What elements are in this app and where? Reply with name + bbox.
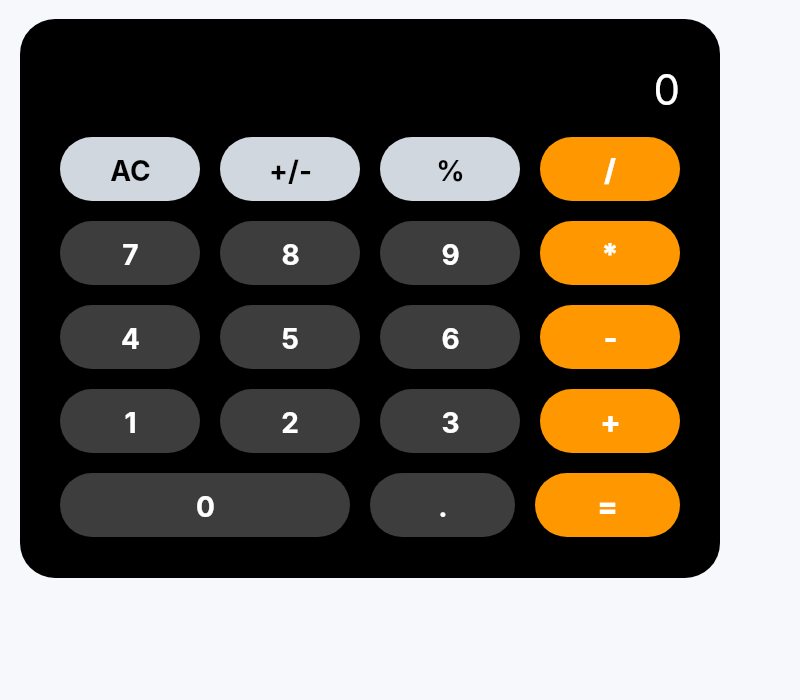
staticText: 3 [441, 406, 460, 440]
staticText: / [604, 152, 616, 188]
staticText: % [436, 154, 465, 188]
button[interactable]: 2 [220, 389, 360, 453]
staticText: * [601, 236, 619, 272]
staticText: 0 [653, 64, 680, 115]
button[interactable]: + [540, 389, 680, 453]
staticText: 7 [122, 238, 139, 272]
button[interactable]: 7 [60, 221, 200, 285]
staticText: 5 [281, 322, 299, 356]
staticText: 1 [124, 406, 137, 440]
button[interactable]: 0 [60, 473, 350, 537]
button[interactable]: 3 [380, 389, 520, 453]
button[interactable]: 5 [220, 305, 360, 369]
staticText: 6 [441, 322, 460, 356]
button[interactable]: . [370, 473, 515, 537]
button[interactable]: / [540, 137, 680, 201]
staticText: AC [110, 154, 151, 188]
button[interactable]: = [535, 473, 680, 537]
button[interactable]: 1 [60, 389, 200, 453]
staticText: - [603, 320, 618, 356]
button[interactable]: 4 [60, 305, 200, 369]
staticText: . [438, 490, 448, 524]
staticText: 2 [281, 406, 299, 440]
button[interactable]: +/- [220, 137, 360, 201]
staticText: 9 [441, 238, 460, 272]
staticText: + [600, 404, 621, 440]
button[interactable]: 8 [220, 221, 360, 285]
button[interactable]: * [540, 221, 680, 285]
button[interactable]: - [540, 305, 680, 369]
staticText: = [597, 488, 618, 524]
button[interactable]: AC [60, 137, 200, 201]
staticText: 8 [281, 238, 300, 272]
staticText: 4 [121, 322, 140, 356]
button[interactable]: % [380, 137, 520, 201]
staticText: +/- [269, 154, 312, 188]
button[interactable]: 6 [380, 305, 520, 369]
staticText: 0 [196, 490, 215, 524]
button[interactable]: 9 [380, 221, 520, 285]
